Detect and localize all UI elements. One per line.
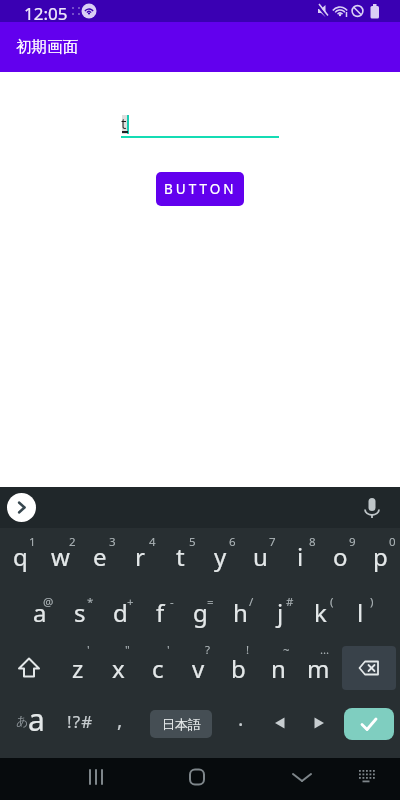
button[interactable]: k (300, 584, 340, 640)
button[interactable]: h (220, 584, 260, 640)
staticText: " (125, 642, 130, 658)
button[interactable]: s (60, 584, 100, 640)
staticText: . (238, 705, 244, 732)
staticText: = (207, 594, 214, 610)
button[interactable] (80, 761, 112, 797)
staticText: … (320, 642, 330, 658)
button[interactable]: v (178, 640, 218, 696)
button[interactable] (0, 640, 58, 696)
staticText: 5 (189, 534, 196, 550)
staticText: ( (330, 594, 334, 610)
staticText: あ (16, 713, 29, 728)
button[interactable]: n (258, 640, 298, 696)
button[interactable] (350, 761, 382, 797)
staticText: 8 (309, 534, 316, 550)
button[interactable]: BUTTON (156, 172, 244, 206)
button[interactable]: o (320, 528, 360, 584)
button[interactable]: あ (0, 696, 60, 752)
staticText: s (74, 596, 86, 629)
staticText: w (51, 540, 70, 573)
staticText: k (314, 596, 327, 629)
staticText: ' (167, 642, 170, 658)
button[interactable]: 日本語 (140, 696, 222, 752)
staticText: v (192, 652, 205, 685)
button[interactable]: m (298, 640, 338, 696)
staticText: b (231, 652, 246, 685)
staticText: 12:05 (24, 2, 68, 24)
staticText: # (286, 594, 294, 610)
button[interactable]: g (180, 584, 220, 640)
staticText: ' (87, 642, 90, 658)
button[interactable]: x (98, 640, 138, 696)
button[interactable]: w (40, 528, 80, 584)
staticText: x (112, 652, 125, 685)
staticText: a (28, 699, 45, 740)
staticText: + (127, 594, 134, 610)
button[interactable]: z (58, 640, 98, 696)
staticText: 6 (229, 534, 236, 550)
button[interactable]: p (360, 528, 400, 584)
staticText: , (117, 706, 123, 733)
staticText: o (333, 540, 348, 573)
button[interactable]: j (260, 584, 300, 640)
staticText: 0 (389, 534, 396, 550)
staticText: BUTTON (164, 180, 237, 198)
staticText: l (357, 596, 364, 629)
staticText: 9 (349, 534, 356, 550)
button[interactable]: i (280, 528, 320, 584)
button[interactable]: b (218, 640, 258, 696)
staticText: * (87, 594, 94, 610)
staticText: y (214, 540, 227, 573)
button[interactable]: q (0, 528, 40, 584)
staticText: h (233, 596, 248, 629)
staticText: n (271, 652, 286, 685)
staticText: ! (246, 642, 250, 658)
staticText: c (152, 652, 164, 685)
button[interactable] (338, 696, 400, 752)
staticText: 初期画面 (16, 37, 78, 57)
button[interactable] (360, 496, 384, 520)
staticText: j (277, 596, 284, 629)
staticText: t (121, 113, 127, 133)
button[interactable] (121, 107, 279, 139)
button[interactable] (300, 696, 338, 752)
button[interactable]: l (340, 584, 380, 640)
button[interactable] (181, 761, 213, 797)
button[interactable] (7, 493, 36, 522)
button[interactable]: c (138, 640, 178, 696)
button[interactable] (260, 696, 300, 752)
button[interactable]: , (100, 696, 140, 752)
button[interactable] (286, 761, 318, 797)
staticText: a (33, 596, 47, 629)
button[interactable]: !?# (60, 696, 100, 752)
button[interactable]: . (222, 696, 260, 752)
staticText: i (297, 540, 304, 573)
staticText: / (249, 594, 254, 610)
staticText: e (93, 540, 107, 573)
staticText: 4 (149, 534, 156, 550)
staticText: ~ (283, 642, 290, 658)
button[interactable] (338, 640, 400, 696)
button[interactable]: d (100, 584, 140, 640)
staticText: f (156, 596, 165, 629)
staticText: d (113, 596, 128, 629)
staticText: 3 (109, 534, 116, 550)
staticText: g (193, 596, 208, 629)
staticText: m (307, 652, 330, 685)
staticText: - (170, 594, 174, 610)
staticText: 日本語 (162, 716, 201, 732)
button[interactable]: t (160, 528, 200, 584)
staticText: z (72, 652, 84, 685)
staticText: ) (370, 594, 374, 610)
button[interactable]: y (200, 528, 240, 584)
staticText: ? (205, 642, 210, 658)
staticText: @ (43, 594, 54, 610)
staticText: !?# (67, 710, 94, 733)
button[interactable]: e (80, 528, 120, 584)
staticText: q (13, 540, 28, 573)
button[interactable]: u (240, 528, 280, 584)
button[interactable]: r (120, 528, 160, 584)
button[interactable]: a (20, 584, 60, 640)
staticText: 2 (69, 534, 76, 550)
button[interactable]: f (140, 584, 180, 640)
